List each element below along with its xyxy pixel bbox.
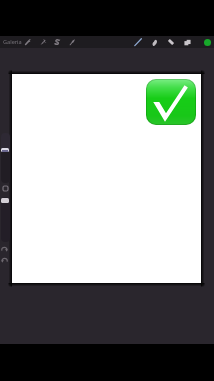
staticText: Galeria xyxy=(3,38,22,46)
button[interactable]: Opacity xyxy=(1,197,10,242)
button[interactable]: Color xyxy=(200,36,214,48)
button[interactable]: Adjustments xyxy=(22,36,34,48)
button[interactable]: Done xyxy=(146,79,196,125)
button[interactable]: Brush xyxy=(132,36,144,48)
button[interactable]: Transform xyxy=(37,36,49,48)
button[interactable]: Brush size xyxy=(1,133,10,183)
button[interactable]: Eraser xyxy=(165,36,177,48)
button[interactable]: Layers xyxy=(181,36,193,48)
button[interactable]: Smudge tool xyxy=(148,36,160,48)
button[interactable]: Galeria xyxy=(3,36,22,48)
button[interactable]: Selection xyxy=(66,36,78,48)
button[interactable]: Undo xyxy=(0,243,9,253)
button[interactable]: Smudge xyxy=(51,36,63,48)
button[interactable]: Modify xyxy=(1,184,10,193)
button[interactable]: Redo xyxy=(0,254,9,264)
